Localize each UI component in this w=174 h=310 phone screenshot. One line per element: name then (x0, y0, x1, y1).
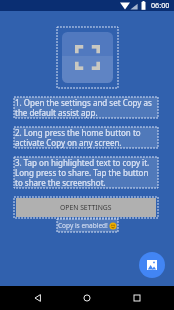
staticText: 3. Tap on highlighted text to copy it. L… (15, 157, 158, 188)
button[interactable]: Recent apps (125, 286, 149, 310)
staticText: Copy is enabled! (58, 221, 108, 230)
button[interactable]: OPEN SETTINGS (16, 198, 156, 217)
staticText: 06:00 (151, 0, 170, 10)
button[interactable]: Copy app icon (62, 32, 113, 83)
button[interactable]: Back (26, 286, 50, 310)
staticText: 2. Long press the home button to activat… (15, 127, 158, 148)
button[interactable]: Share screenshot (139, 252, 165, 278)
button[interactable]: Home (75, 286, 99, 310)
staticText: OPEN SETTINGS (60, 203, 112, 212)
staticText: 1. Open the settings and set Copy as the… (15, 97, 158, 118)
